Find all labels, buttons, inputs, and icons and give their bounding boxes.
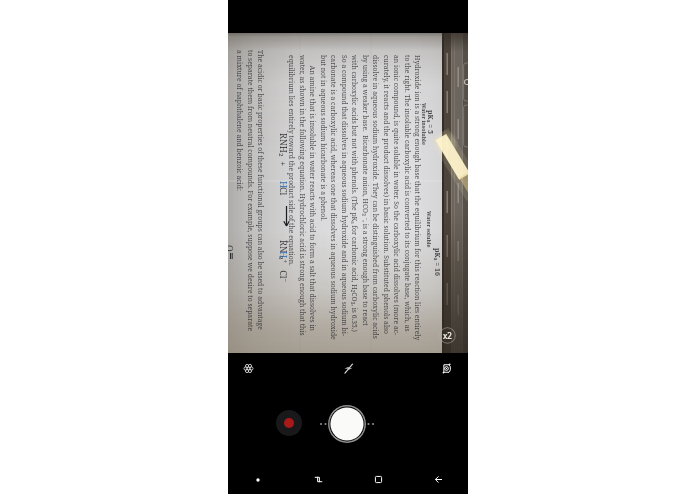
button[interactable]: Home [348, 465, 408, 494]
staticText: ₃⁺ Cl⁻ [278, 256, 290, 283]
staticText: curately, it reacts and the product diss… [382, 55, 391, 334]
staticText: O [228, 245, 236, 252]
staticText: a mixture of naphthalene and benzoic aci… [235, 50, 244, 191]
button[interactable]: Zoom 2x [439, 327, 456, 344]
staticText: RNH₂ + [278, 133, 290, 167]
staticText: carbonate is a carboxylic acid, whereas … [329, 55, 338, 340]
button[interactable]: Hydroxide ion is a strong enough base th… [228, 33, 468, 353]
staticText: water, as shown in the following equatio… [298, 55, 307, 336]
staticText: by using a weaker base. Bicarbonate anio… [361, 55, 370, 326]
staticText: H [278, 251, 290, 259]
button[interactable]: Indicator [228, 465, 288, 494]
staticText: an ionic compound, is quite soluble in w… [392, 55, 401, 336]
staticText: Hydroxide ion is a strong enough base th… [413, 55, 422, 341]
staticText: H [278, 181, 290, 189]
button[interactable]: Switch camera [434, 356, 458, 380]
staticText: So a compound that dissolves in aqueous … [340, 55, 349, 336]
staticText: RN [278, 240, 290, 253]
staticText: pKₐ = 5 [425, 110, 435, 134]
button[interactable]: Settings [236, 356, 260, 380]
button[interactable]: Flash off [336, 356, 360, 380]
button[interactable]: Take photo [328, 405, 366, 443]
staticText: to separate them from neutral compounds.… [246, 50, 255, 332]
staticText: pKₐ = 16 [432, 248, 442, 276]
button[interactable]: Record video [276, 410, 302, 436]
staticText: Water soluble [426, 211, 433, 248]
staticText: The acidic or basic properties of these … [256, 50, 265, 330]
button[interactable]: Back [408, 465, 468, 494]
staticText: equilibrium lies entirely toward the pro… [287, 55, 296, 266]
button[interactable]: Recent apps [288, 465, 348, 494]
staticText: but not in aqueous sodium bicarbonate is… [319, 55, 328, 221]
staticText: dissolve in aqueous sodium hydroxide. Th… [371, 55, 380, 339]
staticText: Cl [278, 187, 290, 196]
staticText: An amine that is insoluble in water reac… [308, 55, 317, 331]
staticText: Water insoluble [421, 103, 428, 145]
staticText: to the right. The insoluble carboxylic a… [403, 55, 412, 332]
staticText: x2 [443, 330, 452, 341]
staticText: with carboxylic acids but not with pheno… [350, 55, 359, 332]
